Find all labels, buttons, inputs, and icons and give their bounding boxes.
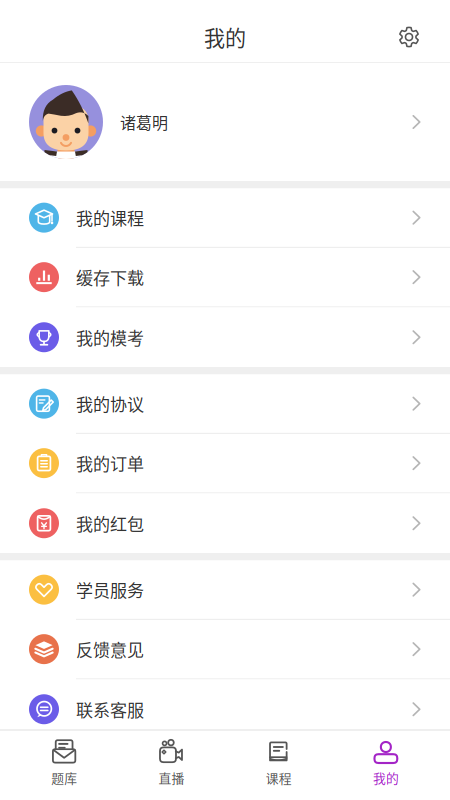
staticText: 我的协议 <box>76 391 144 416</box>
staticText: 我的红包 <box>76 511 144 536</box>
staticText: 课程 <box>266 768 292 787</box>
button[interactable]: 缓存下载 <box>0 248 450 307</box>
button[interactable]: 我的订单 <box>0 434 450 493</box>
button[interactable]: 课程 <box>225 731 332 800</box>
button[interactable]: 题库 <box>10 731 118 800</box>
staticText: 我的订单 <box>76 451 144 475</box>
button[interactable]: 我的模考 <box>0 307 450 367</box>
staticText: 学员服务 <box>76 577 144 602</box>
staticText: 反馈意见 <box>76 637 144 661</box>
button[interactable]: 我的课程 <box>0 188 450 248</box>
button[interactable]: 学员服务 <box>0 560 450 620</box>
staticText: 直播 <box>158 768 184 787</box>
staticText: 题库 <box>51 768 77 787</box>
staticText: 我的 <box>204 22 246 52</box>
button[interactable]: 我的协议 <box>0 374 450 434</box>
staticText: 我的 <box>373 768 399 787</box>
staticText: 我的课程 <box>76 205 144 230</box>
staticText: 我的模考 <box>76 325 144 350</box>
button[interactable]: 我的 <box>332 731 439 800</box>
staticText: 缓存下载 <box>76 265 144 289</box>
button[interactable]: 诸葛明 <box>0 63 450 181</box>
staticText: 诸葛明 <box>120 110 168 134</box>
button[interactable]: 直播 <box>118 731 225 800</box>
button[interactable]: 反馈意见 <box>0 620 450 679</box>
button[interactable]: 联系客服 <box>0 679 450 739</box>
button[interactable]: 我的红包 <box>0 493 450 553</box>
button[interactable]: Settings <box>398 26 420 48</box>
staticText: 联系客服 <box>76 697 144 722</box>
